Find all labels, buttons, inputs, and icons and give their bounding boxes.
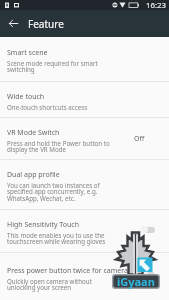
button[interactable]: Dual app profile (0, 160, 169, 209)
staticText: Dual app profile (7, 170, 60, 180)
staticText: Off (134, 134, 145, 144)
staticText: 16:23 (146, 0, 166, 10)
button[interactable]: Smart scene (0, 37, 169, 81)
button[interactable]: Press power button twice for camera (0, 253, 169, 300)
staticText: High Sensitivity Touch (7, 220, 79, 230)
staticText: Quickly open camera without unlocking yo… (7, 277, 119, 292)
button[interactable]: Back (0, 10, 24, 37)
staticText: This mode enables you to use the touchsc… (7, 231, 119, 246)
staticText: Wide touch (7, 92, 45, 102)
button[interactable]: High Sensitivity Touch (0, 210, 169, 252)
staticText: Smart scene (7, 48, 48, 58)
staticText: iGyaan (117, 274, 155, 289)
staticText: You can launch two instances of specifie… (7, 181, 119, 203)
staticText: Press power button twice for camera (7, 266, 128, 276)
button[interactable]: Wide touch (0, 82, 169, 117)
button[interactable]: Toggle (133, 251, 162, 298)
button[interactable]: VR Mode Switch (0, 118, 169, 159)
staticText: VR Mode Switch (7, 128, 60, 138)
staticText: Press and hold the Power button to displ… (7, 139, 119, 154)
button[interactable]: Toggle (133, 208, 162, 250)
staticText: Scene mode required for smart switching (7, 59, 119, 74)
staticText: Feature (28, 17, 64, 31)
staticText: One-touch shortcuts access (7, 103, 119, 111)
